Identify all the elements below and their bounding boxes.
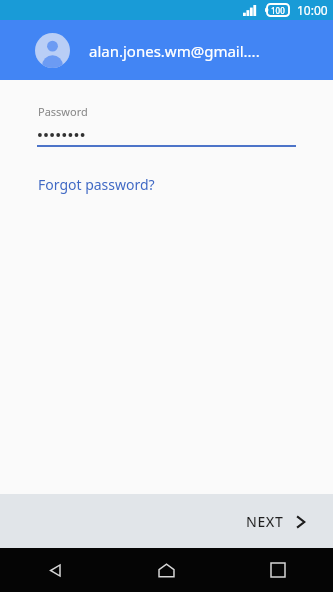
button[interactable]: Recent apps [222, 548, 333, 592]
button[interactable]: Home [111, 548, 222, 592]
staticText: Password [38, 104, 88, 119]
button[interactable]: NEXT [232, 503, 319, 540]
staticText: alan.jones.wm@gmail.... [89, 41, 260, 61]
staticText: 100 [271, 5, 285, 16]
button[interactable]: Back [0, 548, 111, 592]
button[interactable]: Forgot password? [24, 169, 169, 200]
staticText: 10:00 [297, 2, 328, 18]
button[interactable]: alan.jones.wm@gmail.... [0, 20, 333, 80]
staticText: NEXT [246, 512, 284, 531]
staticText: Forgot password? [38, 175, 155, 194]
